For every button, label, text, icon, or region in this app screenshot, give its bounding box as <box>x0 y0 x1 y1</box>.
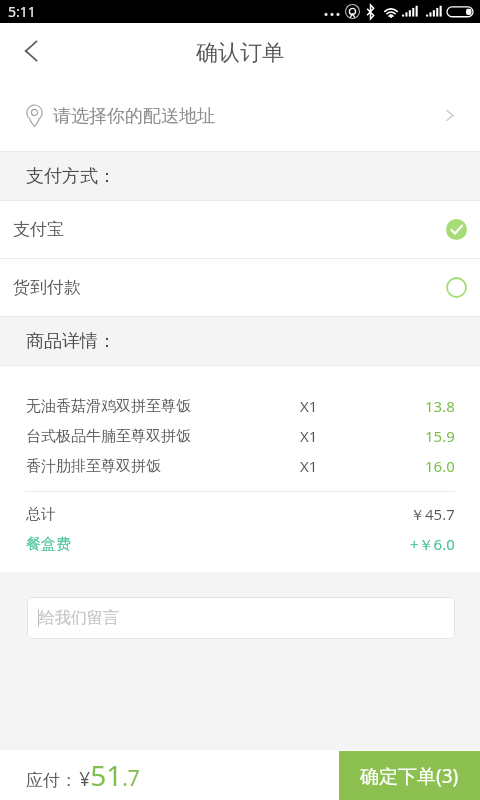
staticText: 给我们留言 <box>39 608 119 628</box>
button[interactable]: 确定下单(3) <box>339 751 480 800</box>
staticText: 确定下单(3) <box>360 763 459 789</box>
staticText: 确认订单 <box>196 39 284 67</box>
staticText: X1 <box>300 426 318 446</box>
staticText: 请选择你的配送地址 <box>53 105 215 128</box>
staticText: 香汁肋排至尊双拼饭 <box>26 457 161 476</box>
staticText: 支付方式： <box>26 165 116 188</box>
staticText: 总计 <box>26 505 56 524</box>
staticText: X1 <box>300 456 318 476</box>
button[interactable]: 货到付款 <box>0 259 480 316</box>
button[interactable]: 请选择你的配送地址 <box>0 86 480 151</box>
staticText: X1 <box>300 396 318 416</box>
staticText: 餐盒费 <box>26 535 71 554</box>
staticText: 应付： ¥51.7 <box>26 756 140 794</box>
staticText: 台式极品牛腩至尊双拼饭 <box>26 427 191 446</box>
button[interactable]: 支付宝 <box>0 201 480 258</box>
staticText: 13.8 <box>425 396 455 416</box>
staticText: ￥45.7 <box>410 504 455 524</box>
staticText: 支付宝 <box>13 219 64 240</box>
staticText: 无油香菇滑鸡双拼至尊饭 <box>26 397 191 416</box>
staticText: 货到付款 <box>13 277 81 298</box>
button[interactable]: 给我们留言 <box>27 597 455 639</box>
staticText: +￥6.0 <box>410 534 455 554</box>
staticText: 商品详情： <box>26 330 116 353</box>
staticText: 16.0 <box>425 456 455 476</box>
staticText: 15.9 <box>425 426 455 446</box>
button[interactable]: Back <box>4 24 58 78</box>
staticText: 5:11 <box>8 2 36 21</box>
